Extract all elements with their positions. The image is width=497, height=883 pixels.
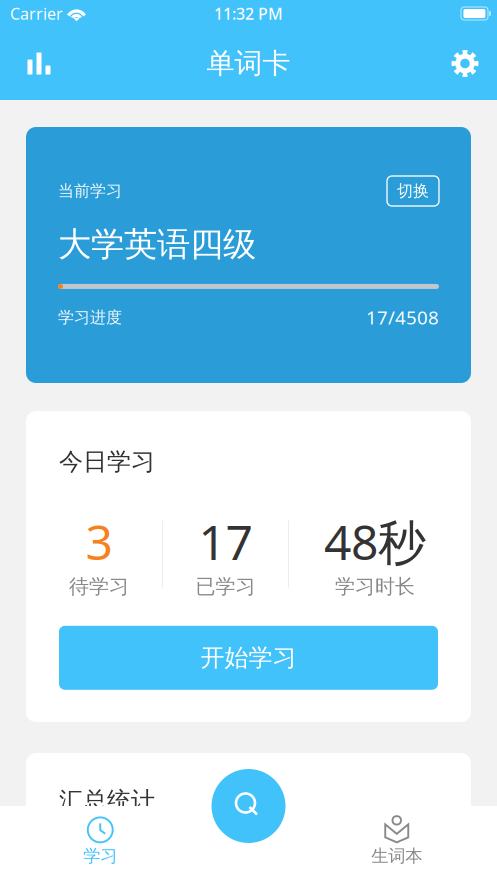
- staticText: 今日学习: [59, 447, 155, 476]
- staticText: 开始学习: [200, 643, 296, 672]
- staticText: 切换: [397, 181, 429, 201]
- staticText: 学习时长: [335, 574, 415, 599]
- button[interactable]: 开始学习: [59, 626, 438, 690]
- staticText: 已学习: [195, 574, 255, 599]
- staticText: 学习进度: [58, 307, 122, 327]
- button[interactable]: 搜索: [211, 769, 285, 843]
- staticText: 3: [85, 509, 112, 573]
- staticText: 学习: [83, 845, 117, 867]
- staticText: Carrier: [10, 3, 63, 24]
- button[interactable]: 设置: [438, 38, 492, 88]
- staticText: 17/4508: [366, 305, 439, 330]
- button[interactable]: 生词本: [296, 806, 497, 877]
- staticText: 单词卡: [206, 46, 290, 81]
- staticText: 汇总统计: [59, 786, 155, 815]
- staticText: 48秒: [324, 509, 426, 573]
- button[interactable]: 学习: [0, 806, 200, 877]
- staticText: 17: [198, 509, 252, 573]
- button[interactable]: 统计: [12, 38, 66, 88]
- staticText: 大学英语四级: [58, 224, 256, 265]
- staticText: 11:32 PM: [214, 3, 283, 24]
- staticText: 当前学习: [58, 181, 122, 201]
- button[interactable]: 切换: [387, 176, 439, 206]
- staticText: 生词本: [371, 845, 422, 867]
- staticText: 待学习: [69, 574, 129, 599]
